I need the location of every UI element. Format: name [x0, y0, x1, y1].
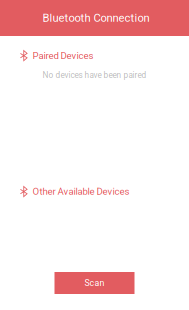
staticText: Other Available Devices [32, 186, 129, 197]
staticText: Scan [84, 278, 104, 288]
staticText: Paired Devices [32, 50, 93, 61]
staticText: Bluetooth Connection [42, 11, 149, 24]
button[interactable]: Scan [54, 272, 134, 294]
staticText: No devices have been paired [42, 70, 146, 80]
